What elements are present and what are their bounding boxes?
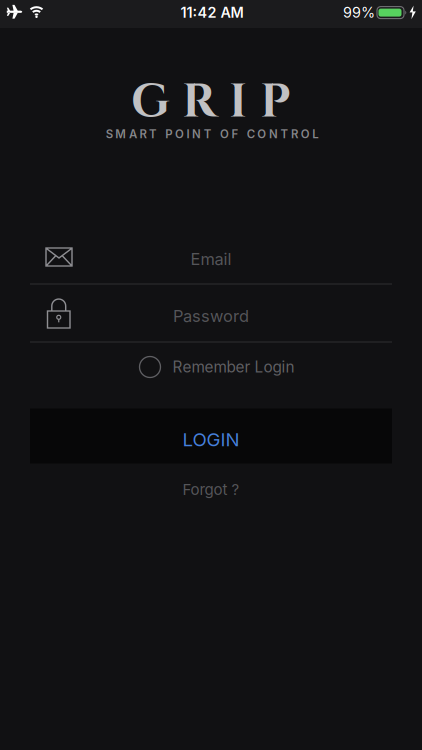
staticText: SMART POINT OF CONTROL [106,127,318,141]
staticText: Password [173,306,249,326]
staticText: 99% [343,4,375,21]
staticText: Remember Login [172,358,294,376]
staticText: GRIP [131,71,291,134]
staticText: Email [190,249,231,269]
button[interactable]: Email [30,234,392,282]
staticText: LOGIN [182,428,239,451]
button[interactable]: Forgot ? [182,480,239,499]
staticText: 11:42 AM [180,4,243,21]
button[interactable]: Remember Login [139,352,294,382]
button[interactable]: LOGIN [30,408,392,463]
staticText: Forgot ? [182,480,239,499]
button[interactable]: Password [30,291,392,339]
